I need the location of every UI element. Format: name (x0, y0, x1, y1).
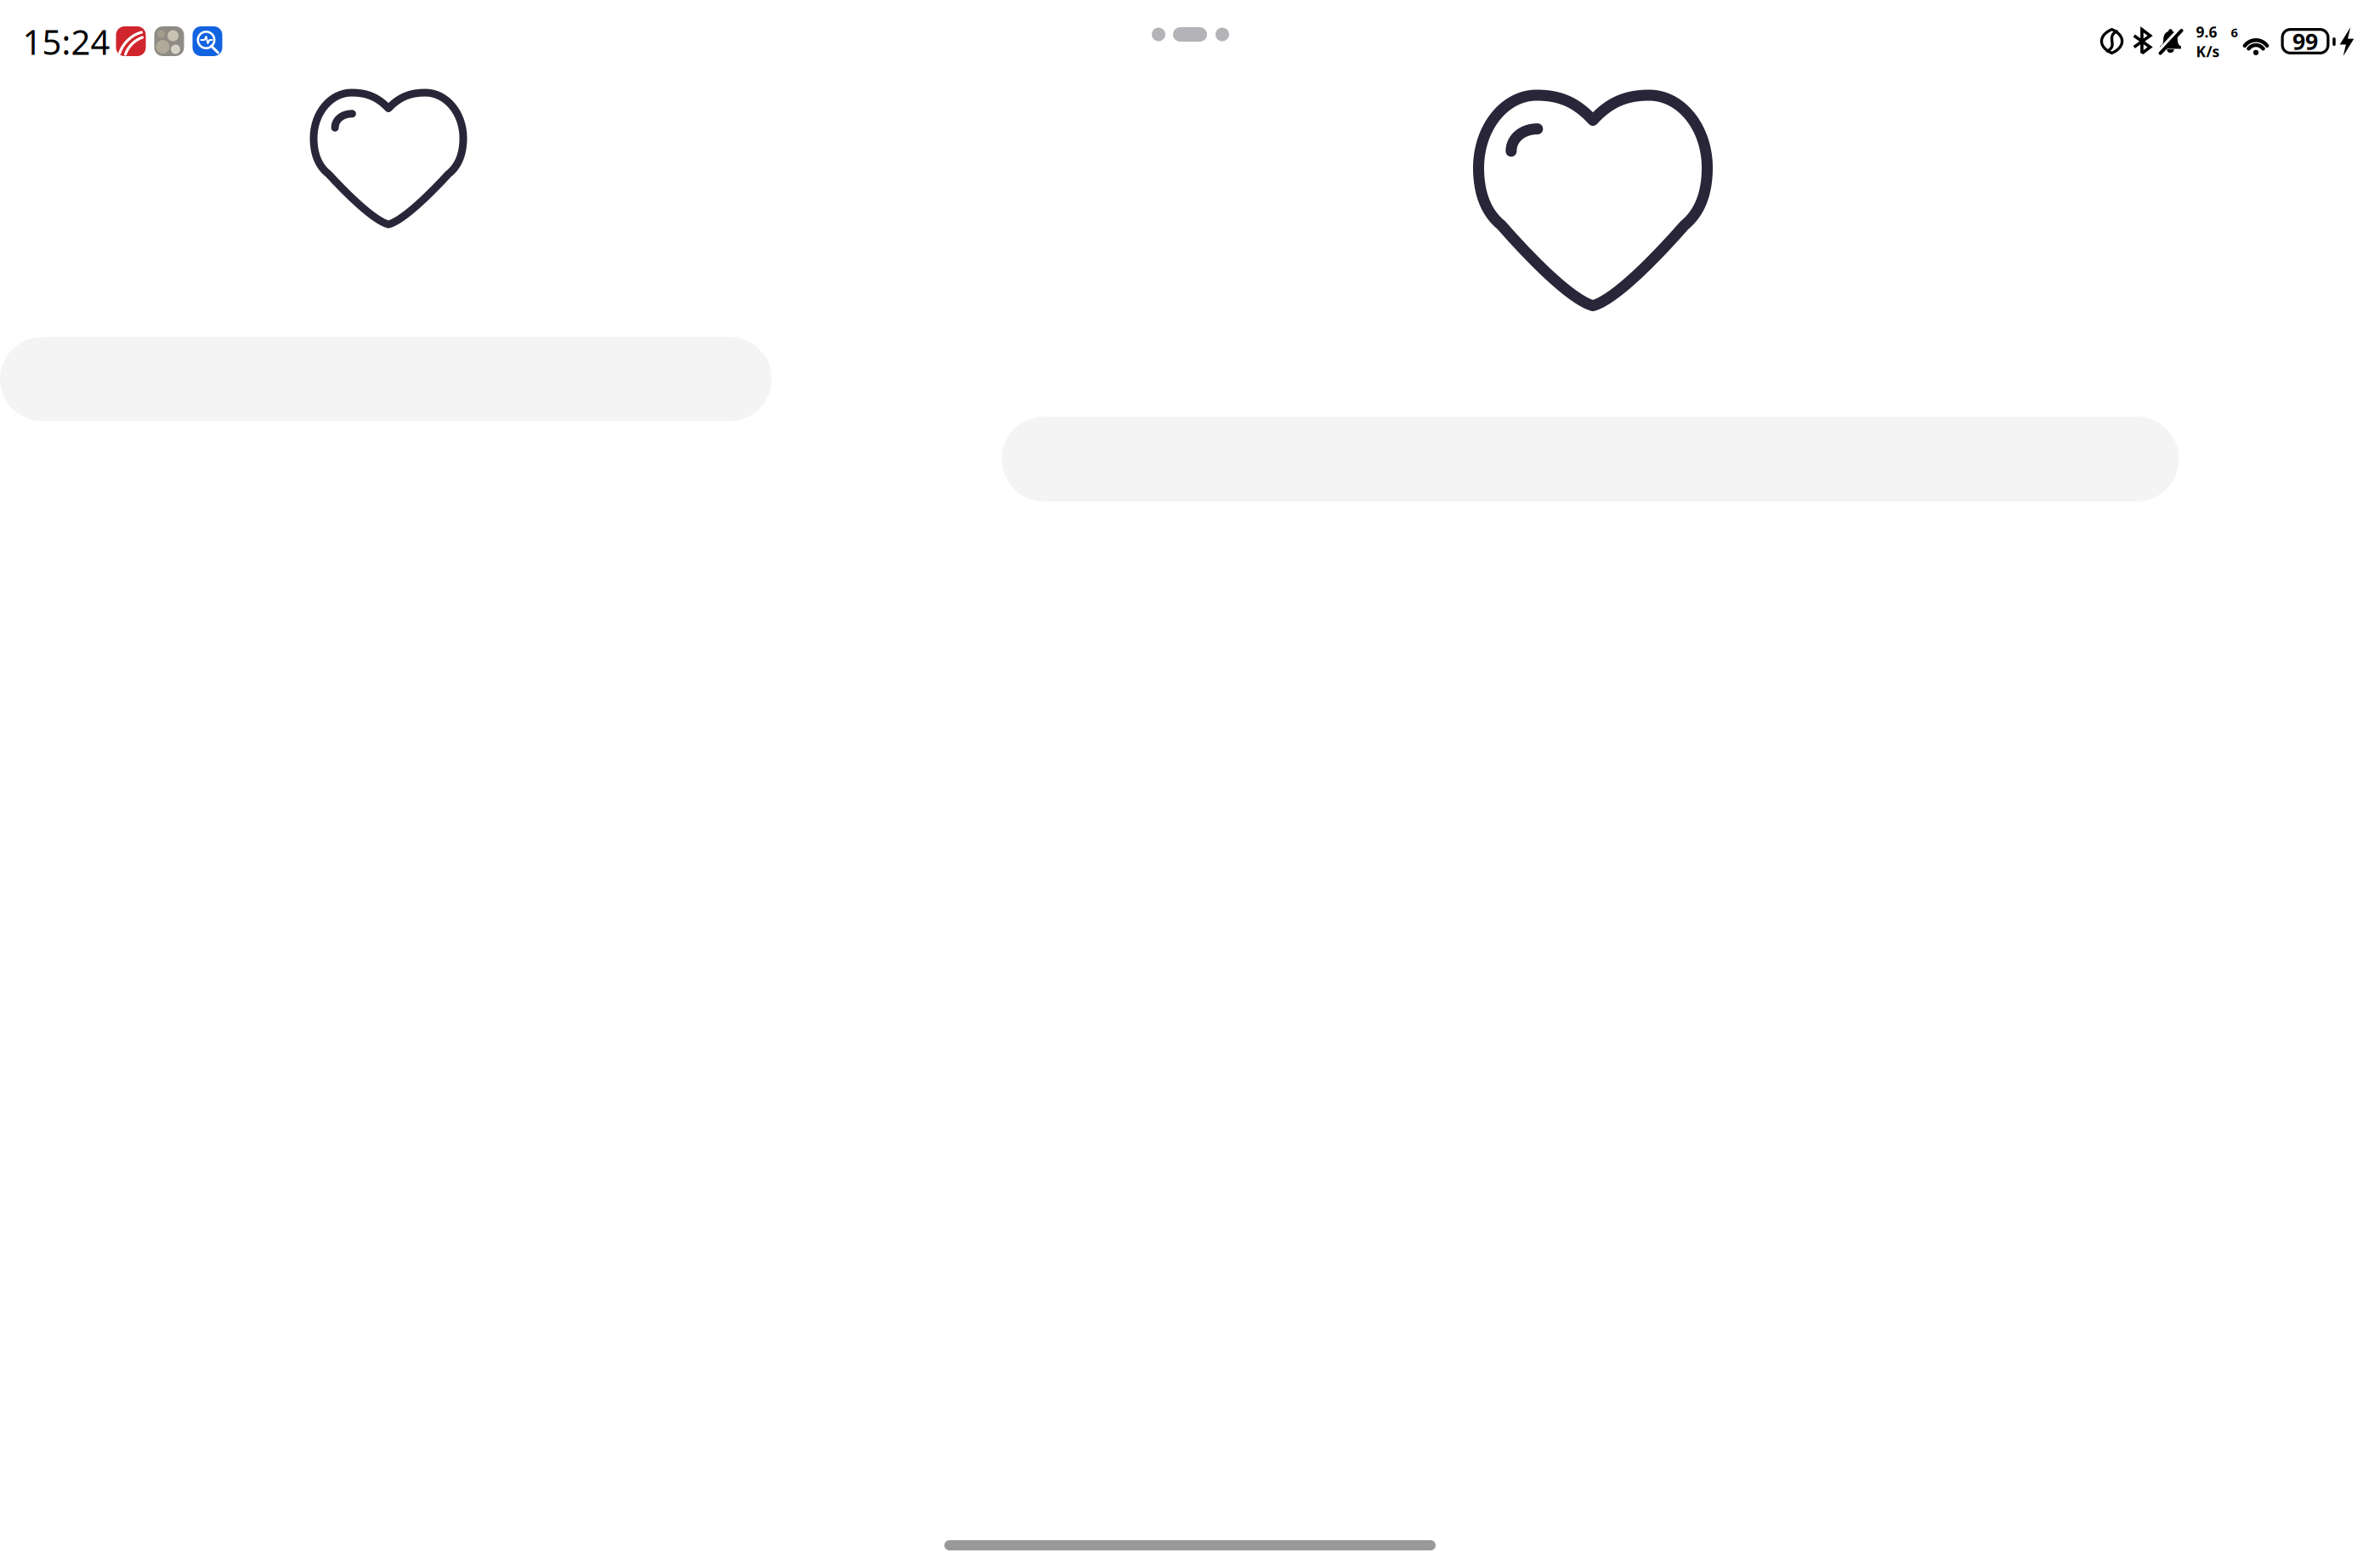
staticText: 99 (2292, 26, 2318, 56)
staticText: 6 (2231, 24, 2238, 41)
staticText: 9.6 (2196, 22, 2217, 42)
staticText: K/s (2196, 42, 2220, 61)
staticText: 15:24 (23, 19, 110, 64)
button[interactable]: Favourite card, loading (1002, 68, 2179, 510)
button[interactable]: Favourite card, loading (0, 68, 772, 442)
